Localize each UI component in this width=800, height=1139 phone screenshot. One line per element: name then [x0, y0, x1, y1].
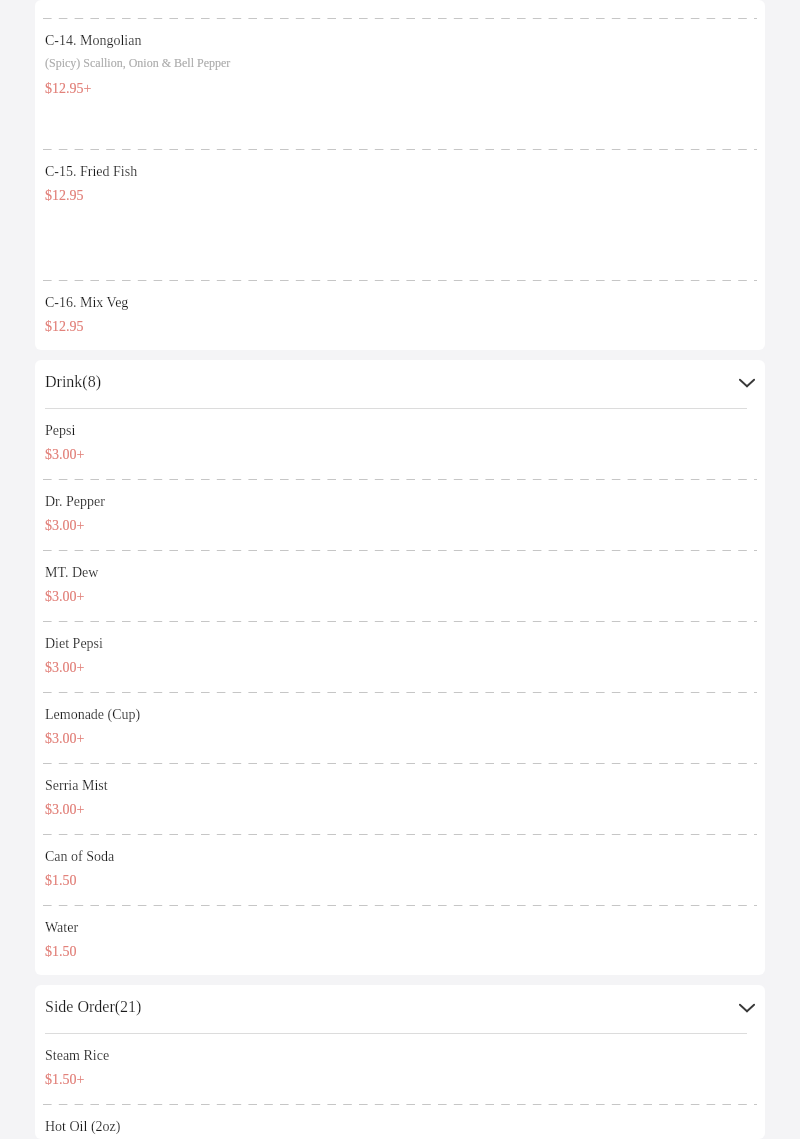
staticText: MT. Dew: [45, 565, 99, 581]
staticText: Dr. Pepper: [45, 494, 105, 510]
other: Collapse Drink(8): [736, 372, 758, 394]
staticText: $3.00+: [45, 518, 85, 534]
staticText: Diet Pepsi: [45, 636, 103, 652]
staticText: Can of Soda: [45, 849, 115, 865]
staticText: $12.95: [45, 188, 84, 204]
staticText: $3.00+: [45, 660, 85, 676]
button[interactable]: Drink(8): [45, 360, 755, 409]
button[interactable]: Side Order(21): [45, 985, 755, 1034]
button[interactable]: Dr. Pepper: [45, 480, 755, 550]
staticText: Steam Rice: [45, 1048, 110, 1064]
button[interactable]: C-15. Fried Fish: [45, 150, 755, 280]
staticText: Lemonade (Cup): [45, 707, 141, 723]
staticText: (Spicy) Scallion, Onion & Bell Pepper: [45, 56, 231, 69]
staticText: Water: [45, 920, 79, 936]
staticText: C-16. Mix Veg: [45, 295, 129, 311]
button[interactable]: MT. Dew: [45, 551, 755, 621]
staticText: $1.50+: [45, 1072, 85, 1088]
staticText: $1.50: [45, 944, 77, 960]
staticText: Pepsi: [45, 423, 76, 439]
button[interactable]: C-14. Mongolian: [45, 19, 755, 149]
staticText: $3.00+: [45, 802, 85, 818]
button[interactable]: Water: [45, 906, 755, 975]
staticText: $3.00+: [45, 447, 85, 463]
staticText: $12.95+: [45, 81, 92, 97]
button[interactable]: Pepsi: [45, 409, 755, 479]
button[interactable]: Serria Mist: [45, 764, 755, 834]
other: Collapse Side Order(21): [736, 997, 758, 1019]
staticText: Serria Mist: [45, 778, 108, 794]
staticText: $3.00+: [45, 589, 85, 605]
staticText: $12.95: [45, 319, 84, 335]
staticText: Drink(8): [45, 373, 101, 391]
button[interactable]: Diet Pepsi: [45, 622, 755, 692]
button[interactable]: Hot Oil (2oz): [45, 1105, 755, 1139]
button[interactable]: C-16. Mix Veg: [45, 281, 755, 350]
staticText: C-14. Mongolian: [45, 33, 142, 49]
button[interactable]: Steam Rice: [45, 1034, 755, 1104]
staticText: Side Order(21): [45, 998, 142, 1016]
staticText: $3.00+: [45, 731, 85, 747]
button[interactable]: Lemonade (Cup): [45, 693, 755, 763]
button[interactable]: Can of Soda: [45, 835, 755, 905]
staticText: Hot Oil (2oz): [45, 1119, 121, 1135]
staticText: $1.50: [45, 873, 77, 889]
staticText: C-15. Fried Fish: [45, 164, 138, 180]
